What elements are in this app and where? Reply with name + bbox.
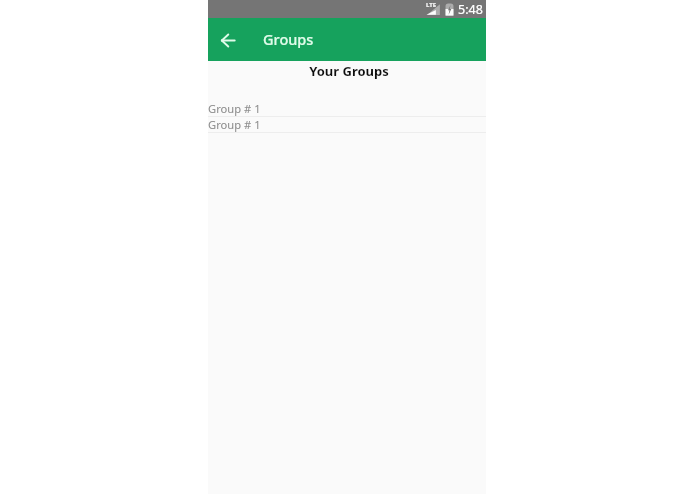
staticText: LTE [426,1,437,9]
staticText: Group # 1 [208,117,261,132]
staticText: 5:48 [458,1,483,18]
staticText: Your Groups [309,62,389,80]
button[interactable]: Group # 1 [208,101,486,117]
button[interactable]: Back [217,29,239,51]
button[interactable]: Group # 1 [208,117,486,133]
staticText: Groups [263,29,314,49]
staticText: Group # 1 [208,101,261,116]
